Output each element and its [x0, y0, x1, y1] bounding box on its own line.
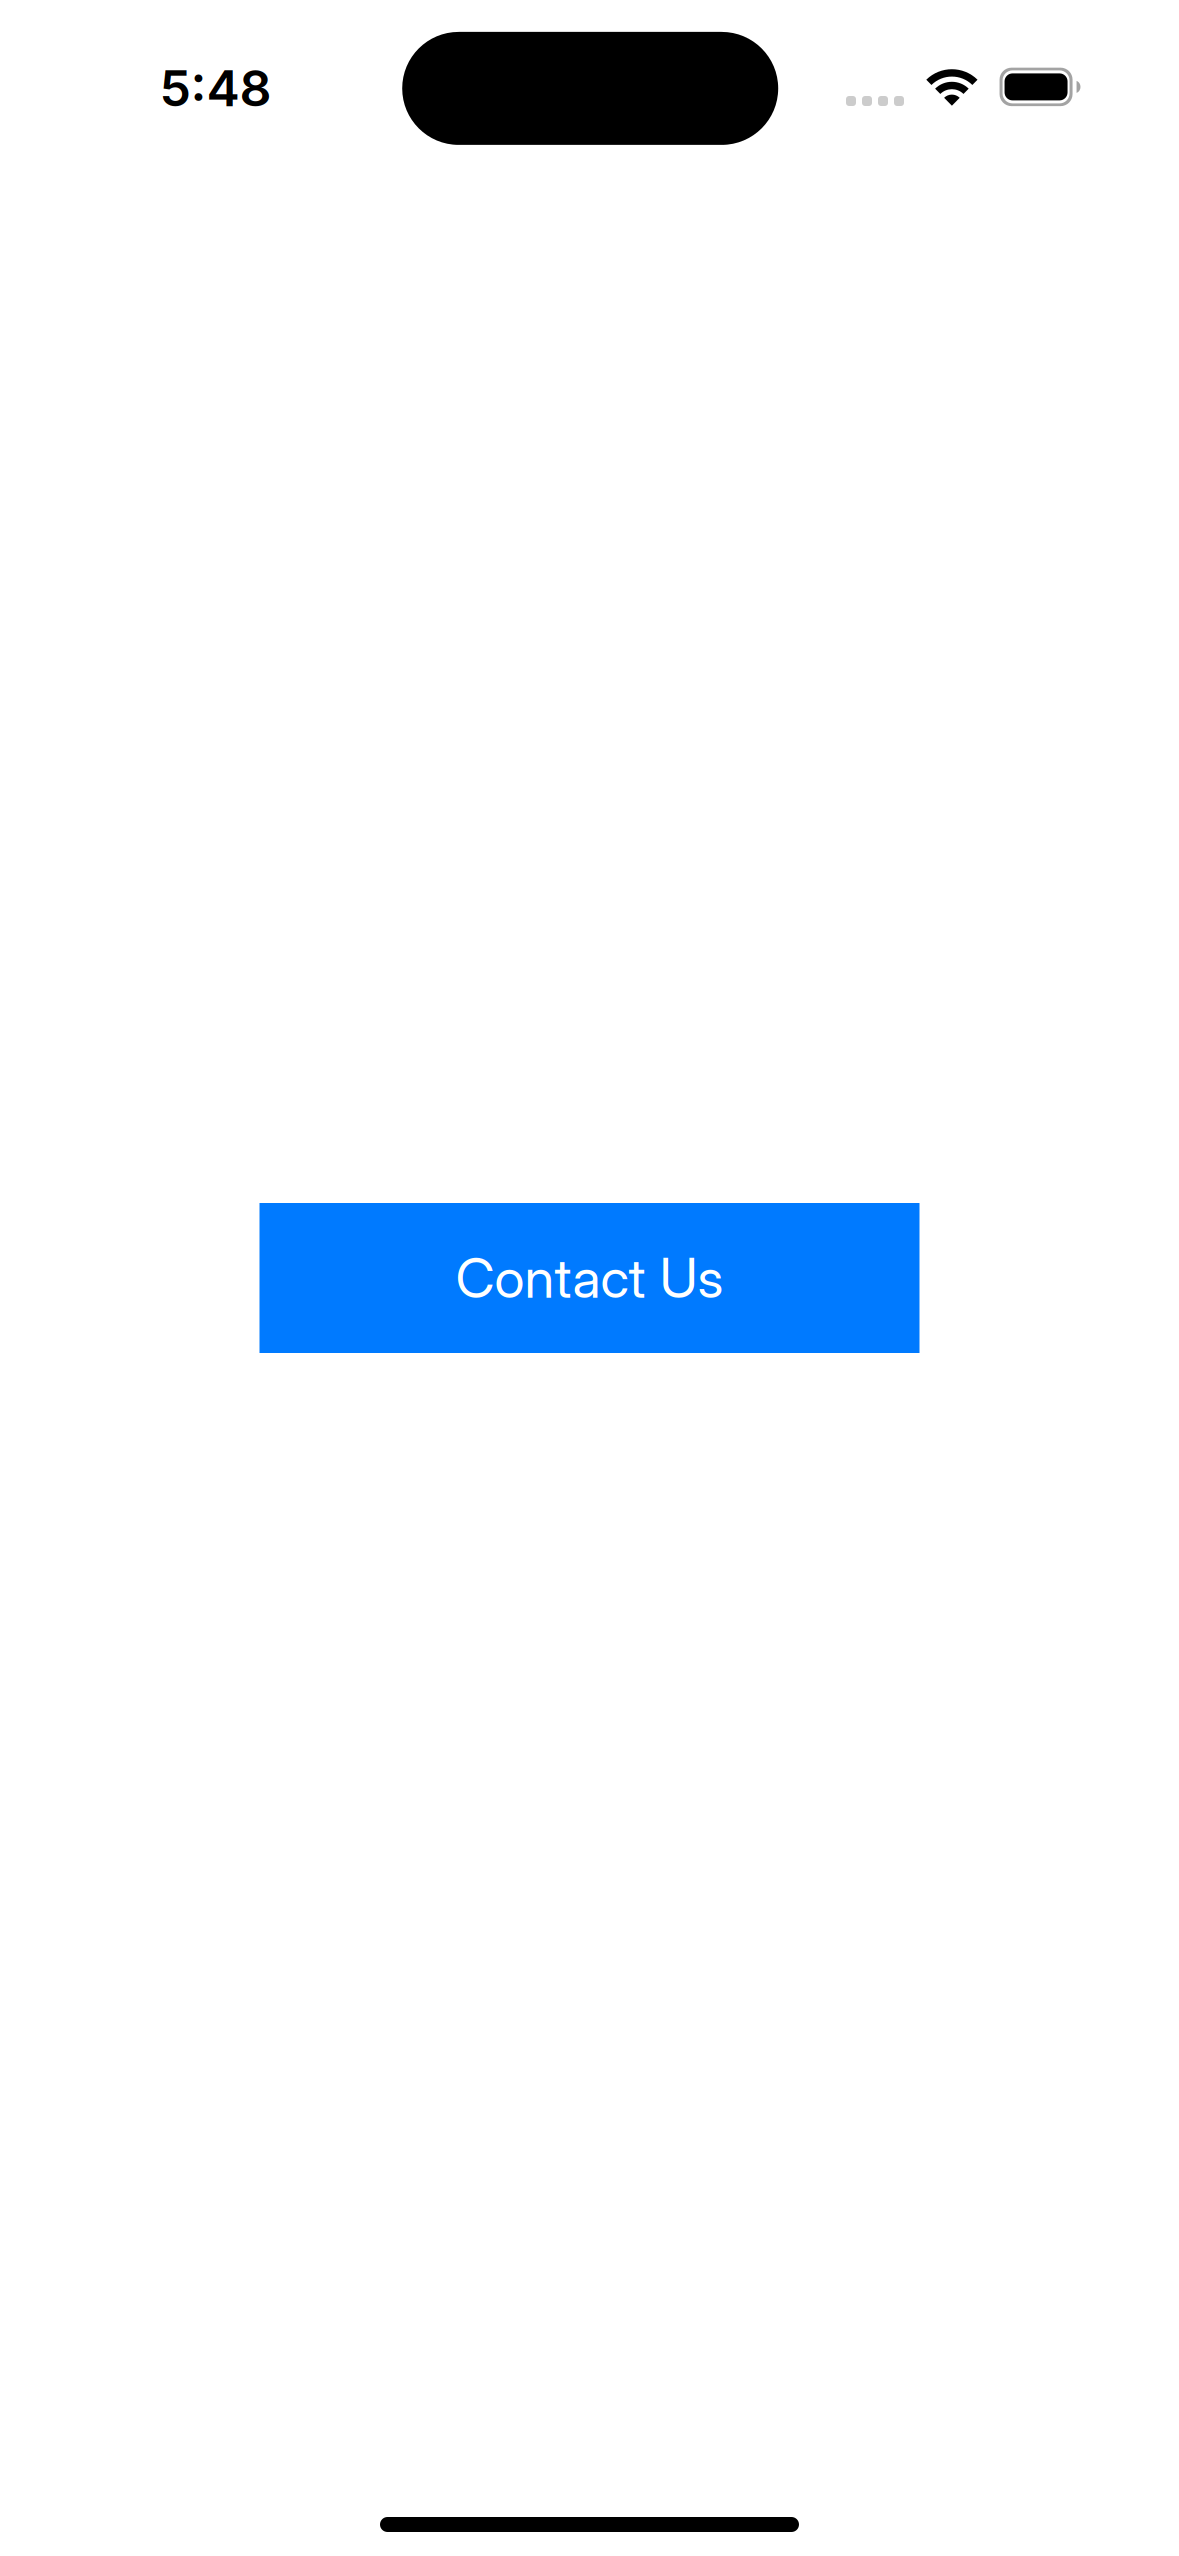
staticText: 5:48 — [159, 58, 271, 118]
button[interactable]: Contact Us — [259, 1203, 919, 1353]
staticText: Contact Us — [455, 1245, 723, 1311]
